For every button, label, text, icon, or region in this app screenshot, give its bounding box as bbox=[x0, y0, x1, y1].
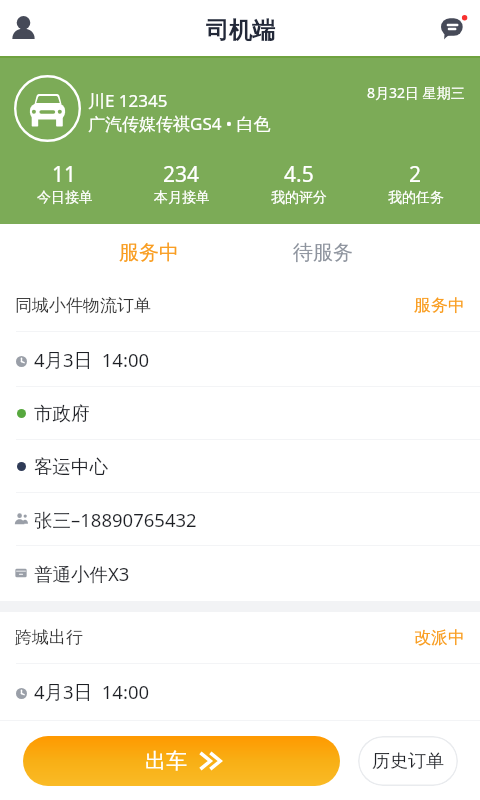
button[interactable]: 市政府 bbox=[0, 387, 480, 439]
staticText: 今日接单 bbox=[37, 189, 93, 207]
staticText: 历史订单 bbox=[372, 750, 444, 773]
button[interactable]: 4月3日 14:00 bbox=[0, 664, 480, 718]
button[interactable]: 客运中心 bbox=[0, 440, 480, 492]
button[interactable]: 待服务 bbox=[236, 224, 410, 280]
button[interactable]: Messages bbox=[432, 6, 474, 48]
button[interactable]: 跨城出行 bbox=[0, 612, 480, 663]
button[interactable]: Profile bbox=[2, 6, 44, 48]
button[interactable]: 普通小件X3 bbox=[0, 546, 480, 601]
staticText: 8月32日 星期三 bbox=[367, 83, 465, 102]
staticText: 4月3日 14:00 bbox=[34, 347, 150, 372]
staticText: 出车 bbox=[145, 748, 187, 774]
staticText: 张三–18890765432 bbox=[34, 507, 197, 532]
button[interactable]: 234 bbox=[123, 158, 240, 224]
button[interactable]: 4.5 bbox=[240, 158, 357, 224]
button[interactable]: 同城小件物流订单 bbox=[0, 280, 480, 331]
staticText: 11 bbox=[52, 160, 77, 189]
button[interactable]: 服务中 bbox=[62, 224, 236, 280]
staticText: 4.5 bbox=[284, 160, 314, 189]
staticText: 客运中心 bbox=[34, 455, 108, 478]
staticText: 2 bbox=[409, 160, 422, 189]
button[interactable]: 历史订单 bbox=[358, 736, 458, 786]
staticText: 服务中 bbox=[414, 295, 465, 316]
staticText: 234 bbox=[163, 160, 200, 189]
staticText: 待服务 bbox=[293, 240, 353, 265]
staticText: 我的评分 bbox=[271, 189, 327, 207]
staticText: 市政府 bbox=[34, 402, 90, 425]
staticText: 我的任务 bbox=[388, 189, 444, 207]
button[interactable]: 出车 bbox=[23, 736, 340, 786]
staticText: 跨城出行 bbox=[15, 627, 83, 648]
staticText: 广汽传媒传祺GS4 • 白色 bbox=[88, 112, 271, 135]
staticText: 同城小件物流订单 bbox=[15, 295, 151, 316]
button[interactable]: 2 bbox=[357, 158, 474, 224]
staticText: 川E 12345 bbox=[88, 89, 168, 112]
button[interactable]: 张三–18890765432 bbox=[0, 493, 480, 545]
staticText: 普通小件X3 bbox=[34, 561, 130, 586]
staticText: 本月接单 bbox=[154, 189, 210, 207]
staticText: 4月3日 14:00 bbox=[34, 679, 150, 704]
button[interactable]: 11 bbox=[6, 158, 123, 224]
staticText: 改派中 bbox=[414, 627, 465, 648]
staticText: 服务中 bbox=[119, 240, 179, 265]
staticText: 司机端 bbox=[206, 16, 275, 45]
button[interactable]: 4月3日 14:00 bbox=[0, 332, 480, 386]
